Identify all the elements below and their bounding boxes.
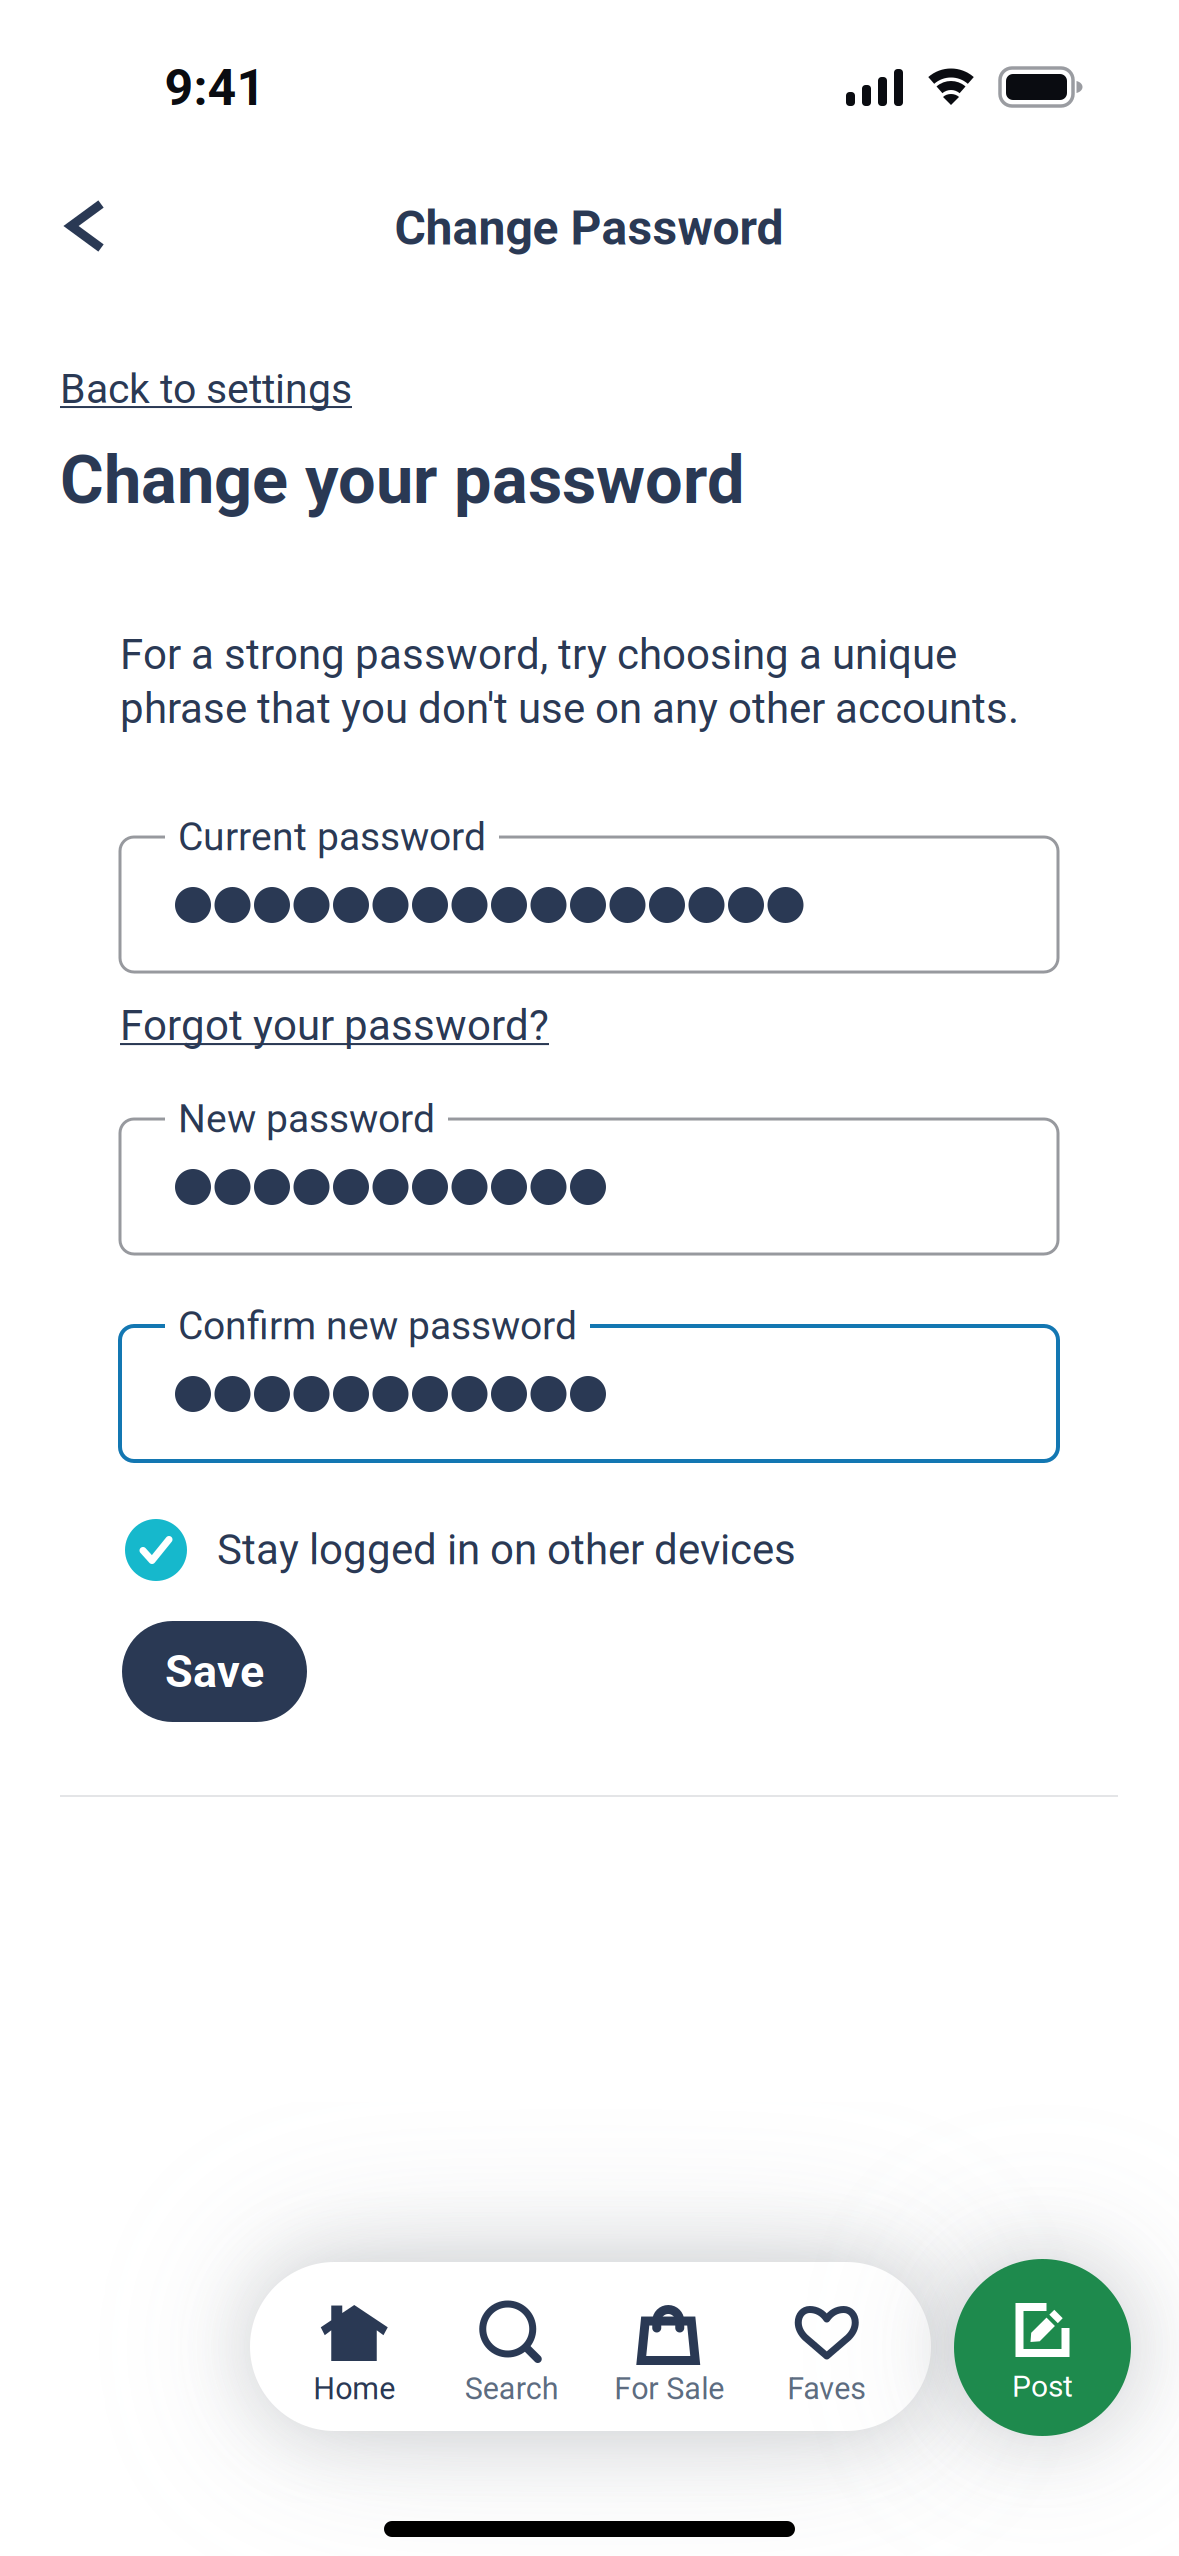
staticText: Post bbox=[1012, 2369, 1073, 2404]
staticText: Change your password bbox=[60, 441, 745, 519]
staticText: Stay logged in on other devices bbox=[217, 1525, 796, 1575]
staticText: Faves bbox=[787, 2371, 866, 2407]
staticText: Current password bbox=[178, 814, 486, 860]
button[interactable]: Back bbox=[53, 188, 119, 264]
staticText: Change Password bbox=[394, 200, 783, 256]
staticText: Confirm new password bbox=[178, 1303, 577, 1349]
staticText: New password bbox=[178, 1096, 435, 1142]
staticText: phrase that you don't use on any other a… bbox=[120, 684, 1019, 733]
staticText: Save bbox=[165, 1645, 264, 1698]
button[interactable]: Back to settings bbox=[60, 365, 352, 413]
button[interactable]: Save bbox=[122, 1621, 307, 1722]
button[interactable]: Post bbox=[954, 2259, 1131, 2436]
button[interactable]: For Sale bbox=[614, 2300, 724, 2407]
button[interactable]: Search bbox=[465, 2300, 559, 2407]
staticText: For a strong password, try choosing a un… bbox=[120, 630, 957, 679]
staticText: 9:41 bbox=[164, 59, 265, 117]
button[interactable]: Faves bbox=[787, 2300, 866, 2407]
button[interactable]: Stay logged in on other devices bbox=[125, 1519, 796, 1581]
staticText: Search bbox=[465, 2371, 559, 2407]
staticText: Home bbox=[313, 2371, 395, 2407]
button[interactable]: Home bbox=[313, 2300, 395, 2407]
staticText: For Sale bbox=[614, 2371, 724, 2407]
staticText: Forgot your password? bbox=[120, 1001, 549, 1050]
staticText: Back to settings bbox=[60, 365, 352, 413]
button[interactable]: Forgot your password? bbox=[120, 1001, 549, 1050]
